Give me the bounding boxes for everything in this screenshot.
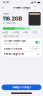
staticText: 8 — [37, 53, 38, 55]
button[interactable]: Back — [1, 5, 5, 10]
staticText: Offload Unused Apps — [4, 39, 26, 42]
staticText: 1.2 GB — [30, 47, 38, 50]
staticText: 116.2GB — [3, 15, 23, 22]
staticText: Media — [14, 31, 19, 34]
staticText: of 256GB used — [3, 22, 16, 24]
staticText: Review Large Files — [4, 53, 24, 55]
button[interactable]: Manage Storage — [2, 84, 41, 90]
staticText: Available — [3, 13, 9, 15]
staticText: Apps — [4, 31, 8, 34]
staticText: 9:41 — [3, 1, 9, 4]
staticText: Mail — [24, 31, 27, 34]
staticText: Free — [33, 31, 37, 34]
staticText: iPhone Storage — [13, 6, 30, 9]
staticText: Free up 4.3 GB — [4, 43, 18, 45]
staticText: Manage Storage — [12, 86, 30, 89]
button[interactable]: Recently Deleted — [2, 46, 41, 51]
button[interactable]: Review Large Files — [2, 52, 41, 57]
staticText: RECOMMENDED — [3, 35, 18, 38]
staticText: Recently Deleted — [4, 47, 22, 50]
button[interactable]: Offload Unused Apps — [2, 38, 41, 46]
